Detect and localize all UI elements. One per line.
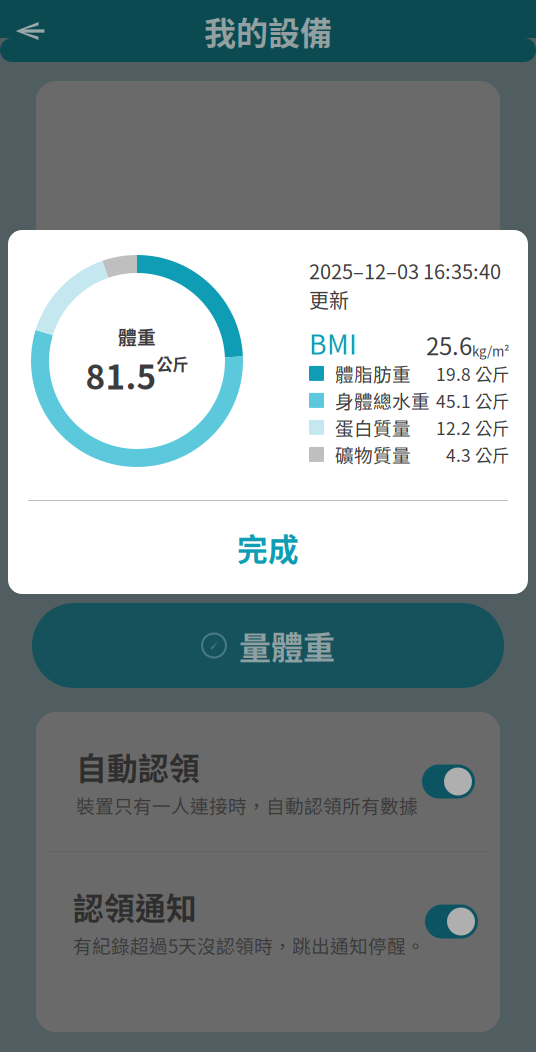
staticText: kg/m² [472, 341, 509, 360]
staticText: 19.8 公斤 [436, 361, 509, 386]
staticText: 身體總水重 [335, 387, 430, 414]
staticText: 4.3 公斤 [446, 442, 509, 467]
staticText: 81.5 [85, 351, 156, 399]
staticText: BMI [309, 324, 357, 362]
staticText: 我的設備 [204, 8, 332, 54]
staticText: 完成 [237, 525, 299, 570]
button[interactable]: Back [0, 0, 60, 62]
staticText: 45.1 公斤 [436, 388, 509, 413]
staticText: 裝置只有一人連接時，自動認領所有數據 [76, 792, 418, 819]
button[interactable]: 量體重 [32, 603, 504, 688]
staticText: 2025–12–03 16:35:40更新 [309, 256, 501, 314]
staticText: 自動認領 [76, 744, 200, 789]
staticText: 量體重 [239, 622, 335, 669]
button[interactable]: 完成 [8, 501, 528, 594]
staticText: 體脂肪重 [335, 360, 411, 387]
button[interactable]: 自動認領 [36, 712, 500, 851]
staticText: 體重 [118, 323, 156, 350]
staticText: 25.6 [426, 327, 472, 362]
staticText: 有紀錄超過5天沒認領時，跳出通知停醒。 [73, 932, 425, 959]
staticText: 礦物質量 [335, 441, 411, 468]
staticText: 公斤 [156, 352, 188, 375]
button[interactable]: 認領通知 [33, 852, 503, 991]
staticText: 12.2 公斤 [436, 415, 509, 440]
staticText: 認領通知 [73, 884, 197, 929]
staticText: 蛋白質量 [335, 414, 411, 441]
